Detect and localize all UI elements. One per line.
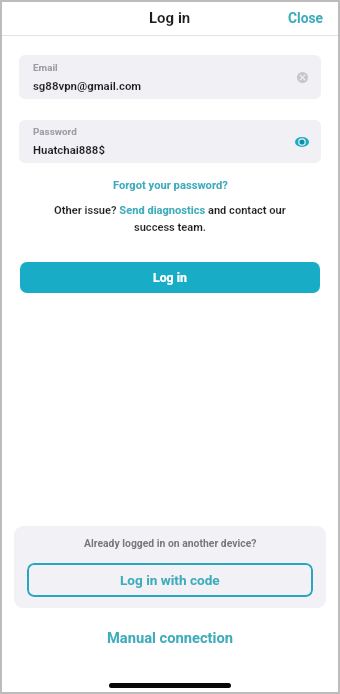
- staticText: Other issue? Send diagnostics and contac…: [40, 204, 300, 233]
- staticText: Log in with code: [120, 572, 220, 588]
- staticText: Log in: [153, 271, 187, 285]
- staticText: Close: [288, 10, 324, 26]
- staticText: Already logged in on another device?: [84, 537, 257, 549]
- staticText: sg88vpn@gmail.com: [33, 79, 142, 92]
- staticText: Email: [33, 62, 58, 74]
- button[interactable]: Password: [19, 120, 321, 163]
- staticText: Manual connection: [107, 629, 233, 646]
- button[interactable]: Log in with code: [27, 563, 313, 597]
- staticText: Log in: [149, 9, 191, 27]
- button[interactable]: Close: [276, 4, 338, 32]
- button[interactable]: Show password: [290, 130, 314, 154]
- button[interactable]: Email: [19, 55, 321, 99]
- staticText: Huatchai888$: [33, 143, 105, 156]
- button[interactable]: Log in: [20, 262, 320, 293]
- button[interactable]: Manual connection: [2, 625, 338, 649]
- staticText: Password: [33, 126, 77, 138]
- button[interactable]: Forgot your password?: [2, 174, 338, 196]
- button[interactable]: Clear email: [290, 65, 314, 89]
- staticText: Forgot your password?: [113, 179, 228, 192]
